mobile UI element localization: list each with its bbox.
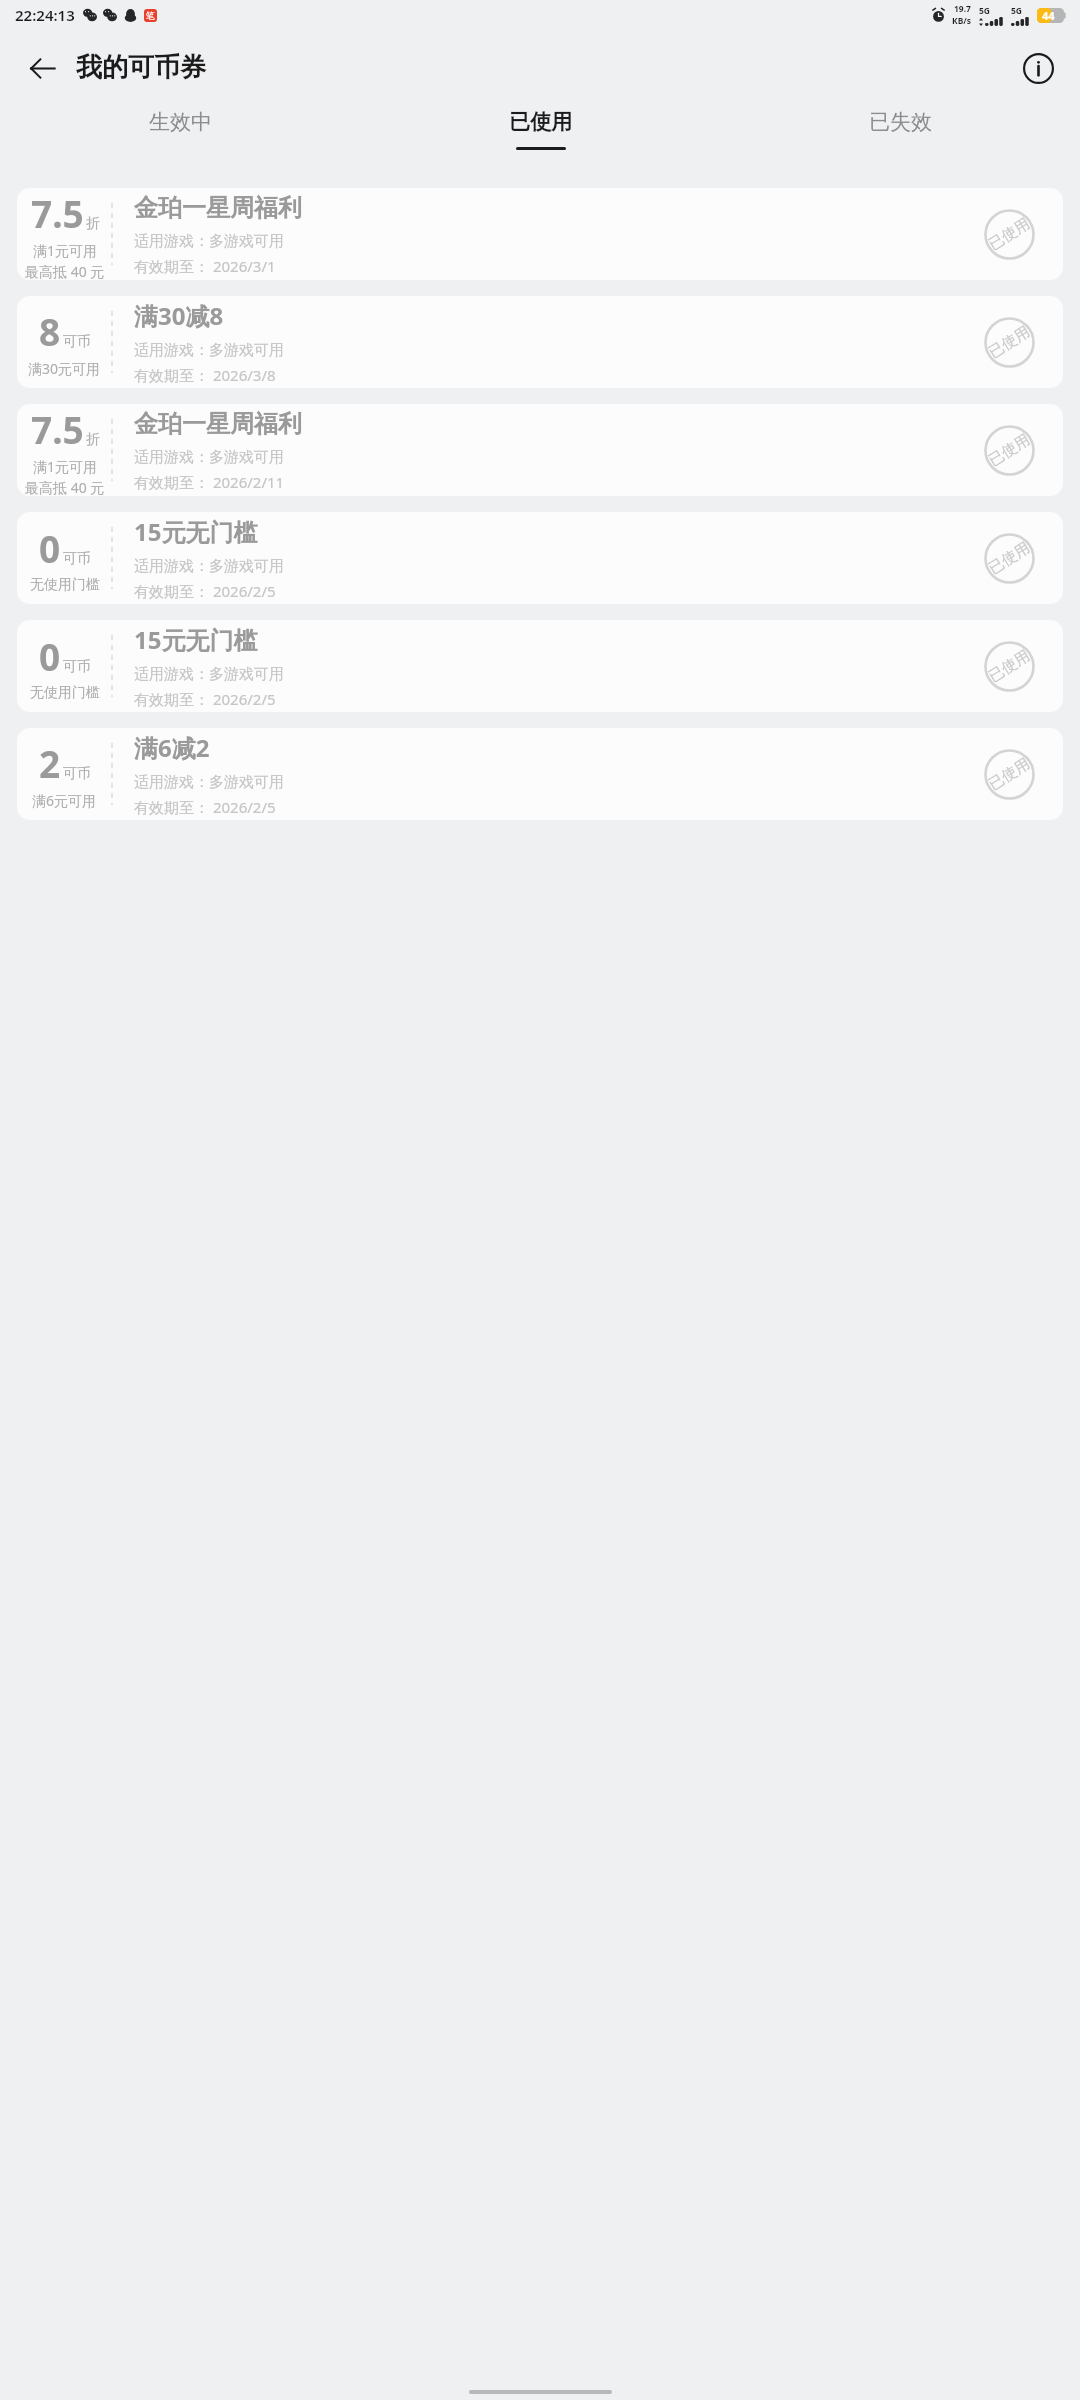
- staticText: 8: [39, 306, 61, 356]
- staticText: 可币: [63, 658, 91, 676]
- staticText: 5G: [979, 5, 991, 17]
- staticText: 5G: [1011, 5, 1023, 17]
- staticText: 满1元可用: [33, 241, 98, 260]
- staticText: 可币: [63, 765, 91, 783]
- button[interactable]: 生效中: [0, 105, 360, 147]
- staticText: 可币: [63, 333, 91, 351]
- staticText: 有效期至： 2026/2/5: [134, 581, 276, 601]
- staticText: 有效期至： 2026/2/11: [134, 472, 285, 492]
- button[interactable]: 7.5: [17, 188, 1063, 280]
- staticText: 适用游戏：多游戏可用: [134, 773, 284, 792]
- staticText: 有效期至： 2026/3/8: [134, 365, 276, 385]
- staticText: 已失效: [869, 109, 932, 135]
- staticText: 满6减2: [134, 731, 210, 764]
- staticText: 满1元可用: [33, 457, 98, 476]
- staticText: 15元无门槛: [134, 515, 258, 548]
- staticText: 适用游戏：多游戏可用: [134, 557, 284, 576]
- button[interactable]: 0: [17, 620, 1063, 712]
- staticText: 生效中: [149, 109, 212, 135]
- staticText: 折: [86, 215, 100, 233]
- staticText: 已使用: [985, 214, 1034, 254]
- staticText: 我的可币券: [76, 51, 206, 84]
- staticText: 笔: [146, 10, 155, 21]
- staticText: 最高抵 40 元: [25, 478, 105, 496]
- staticText: 已使用: [985, 538, 1034, 578]
- staticText: 0: [39, 523, 61, 573]
- staticText: 已使用: [985, 322, 1034, 362]
- staticText: 22:24:13: [15, 5, 75, 25]
- staticText: 已使用: [509, 109, 572, 135]
- staticText: 满30元可用: [28, 359, 101, 378]
- staticText: 金珀一星周福利: [134, 193, 302, 223]
- staticText: 有效期至： 2026/3/1: [134, 256, 276, 276]
- staticText: 最高抵 40 元: [25, 262, 105, 280]
- staticText: 15元无门槛: [134, 623, 258, 656]
- button[interactable]: Info: [1014, 44, 1062, 92]
- staticText: 19.7: [954, 3, 971, 15]
- button[interactable]: 已失效: [720, 105, 1080, 147]
- staticText: 可币: [63, 550, 91, 568]
- staticText: 适用游戏：多游戏可用: [134, 665, 284, 684]
- staticText: 7.5: [31, 404, 84, 454]
- button[interactable]: 已使用: [360, 105, 720, 150]
- staticText: 满6元可用: [32, 791, 97, 810]
- staticText: 已使用: [985, 754, 1034, 794]
- staticText: 折: [86, 431, 100, 449]
- staticText: KB/s: [952, 15, 972, 27]
- staticText: 适用游戏：多游戏可用: [134, 448, 284, 467]
- staticText: 有效期至： 2026/2/5: [134, 689, 276, 709]
- button[interactable]: 7.5: [17, 404, 1063, 496]
- staticText: 无使用门槛: [30, 576, 100, 594]
- staticText: 7.5: [31, 188, 84, 238]
- staticText: 无使用门槛: [30, 684, 100, 702]
- staticText: 已使用: [985, 646, 1034, 686]
- button[interactable]: 2: [17, 728, 1063, 820]
- staticText: 44: [1042, 8, 1055, 23]
- staticText: 金珀一星周福利: [134, 409, 302, 439]
- button[interactable]: 8: [17, 296, 1063, 388]
- button[interactable]: 0: [17, 512, 1063, 604]
- staticText: 适用游戏：多游戏可用: [134, 341, 284, 360]
- staticText: 适用游戏：多游戏可用: [134, 232, 284, 251]
- staticText: 已使用: [985, 430, 1034, 470]
- staticText: 2: [39, 738, 61, 788]
- button[interactable]: Back: [18, 44, 66, 92]
- staticText: 0: [39, 631, 61, 681]
- staticText: 有效期至： 2026/2/5: [134, 797, 276, 817]
- staticText: 满30减8: [134, 299, 224, 332]
